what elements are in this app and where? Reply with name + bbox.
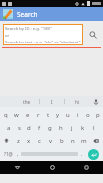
staticText: f (38, 124, 41, 132)
button[interactable]: d (24, 121, 34, 134)
button[interactable]: the (14, 96, 39, 107)
staticText: s (18, 124, 21, 132)
staticText: the (23, 99, 31, 105)
staticText: p (96, 111, 100, 119)
staticText: u (66, 111, 70, 119)
button[interactable]: Enter (88, 149, 99, 160)
button[interactable]: Voice input (89, 96, 103, 107)
staticText: ?1@ (4, 151, 13, 157)
button[interactable]: u (63, 108, 73, 121)
button[interactable]: I (40, 96, 64, 107)
staticText: or (5, 33, 10, 39)
button[interactable]: m (78, 134, 89, 147)
staticText: k (81, 124, 85, 132)
button[interactable]: t (43, 108, 53, 121)
button[interactable]: . (78, 147, 85, 161)
button[interactable]: k (77, 121, 88, 134)
staticText: r (37, 111, 40, 119)
staticText: h (59, 124, 63, 132)
button[interactable]: Back (0, 161, 35, 174)
button[interactable]: hi (65, 96, 89, 107)
button[interactable]: Home (35, 161, 69, 174)
staticText: Search (17, 10, 38, 19)
button[interactable]: b (56, 134, 67, 147)
staticText: Search by text : e.g. "elo" or "elephant… (5, 40, 81, 43)
button[interactable]: a (4, 121, 14, 134)
button[interactable]: y (53, 108, 63, 121)
staticText: q (4, 111, 8, 119)
staticText: Search by ID : e.g. "189" (5, 26, 52, 32)
button[interactable]: g (44, 121, 55, 134)
button[interactable]: , (14, 147, 21, 161)
staticText: t (47, 111, 50, 119)
button[interactable]: f (34, 121, 44, 134)
staticText: a (7, 124, 11, 132)
button[interactable]: Shift (0, 134, 13, 147)
staticText: z (17, 137, 20, 145)
button[interactable]: v (45, 134, 56, 147)
button[interactable]: Space (21, 147, 78, 161)
button[interactable]: o (83, 108, 93, 121)
staticText: o (86, 111, 90, 119)
staticText: x (27, 137, 31, 145)
staticText: d (27, 124, 31, 132)
staticText: w (14, 111, 19, 119)
button[interactable]: w (11, 108, 22, 121)
button[interactable]: l (88, 121, 99, 134)
staticText: i (77, 111, 79, 119)
staticText: n (71, 137, 75, 145)
button[interactable]: c (34, 134, 45, 147)
staticText: m (81, 137, 87, 145)
staticText: c (38, 137, 41, 145)
button[interactable]: x (23, 134, 34, 147)
button[interactable]: h (55, 121, 66, 134)
button[interactable]: Search (86, 28, 100, 42)
staticText: l (93, 124, 95, 132)
button[interactable]: z (13, 134, 23, 147)
button[interactable]: i (73, 108, 83, 121)
staticText: . (81, 151, 83, 158)
button[interactable]: n (67, 134, 78, 147)
button[interactable]: Recent apps (69, 161, 103, 174)
button[interactable]: e (22, 108, 33, 121)
button[interactable]: Backspace (89, 134, 103, 147)
button[interactable]: p (93, 108, 103, 121)
staticText: y (56, 111, 60, 119)
button[interactable]: Search by ID : e.g. "189" (3, 24, 83, 45)
button[interactable]: q (0, 108, 11, 121)
staticText: j (71, 124, 73, 132)
staticText: I (51, 99, 53, 105)
staticText: hi (75, 99, 80, 105)
button[interactable]: ?1@ (2, 147, 14, 161)
button[interactable]: s (14, 121, 24, 134)
staticText: , (17, 151, 19, 158)
staticText: e (26, 111, 30, 119)
button[interactable]: r (33, 108, 43, 121)
staticText: g (48, 124, 52, 132)
staticText: b (60, 137, 64, 145)
button[interactable]: j (66, 121, 77, 134)
staticText: v (49, 137, 53, 145)
